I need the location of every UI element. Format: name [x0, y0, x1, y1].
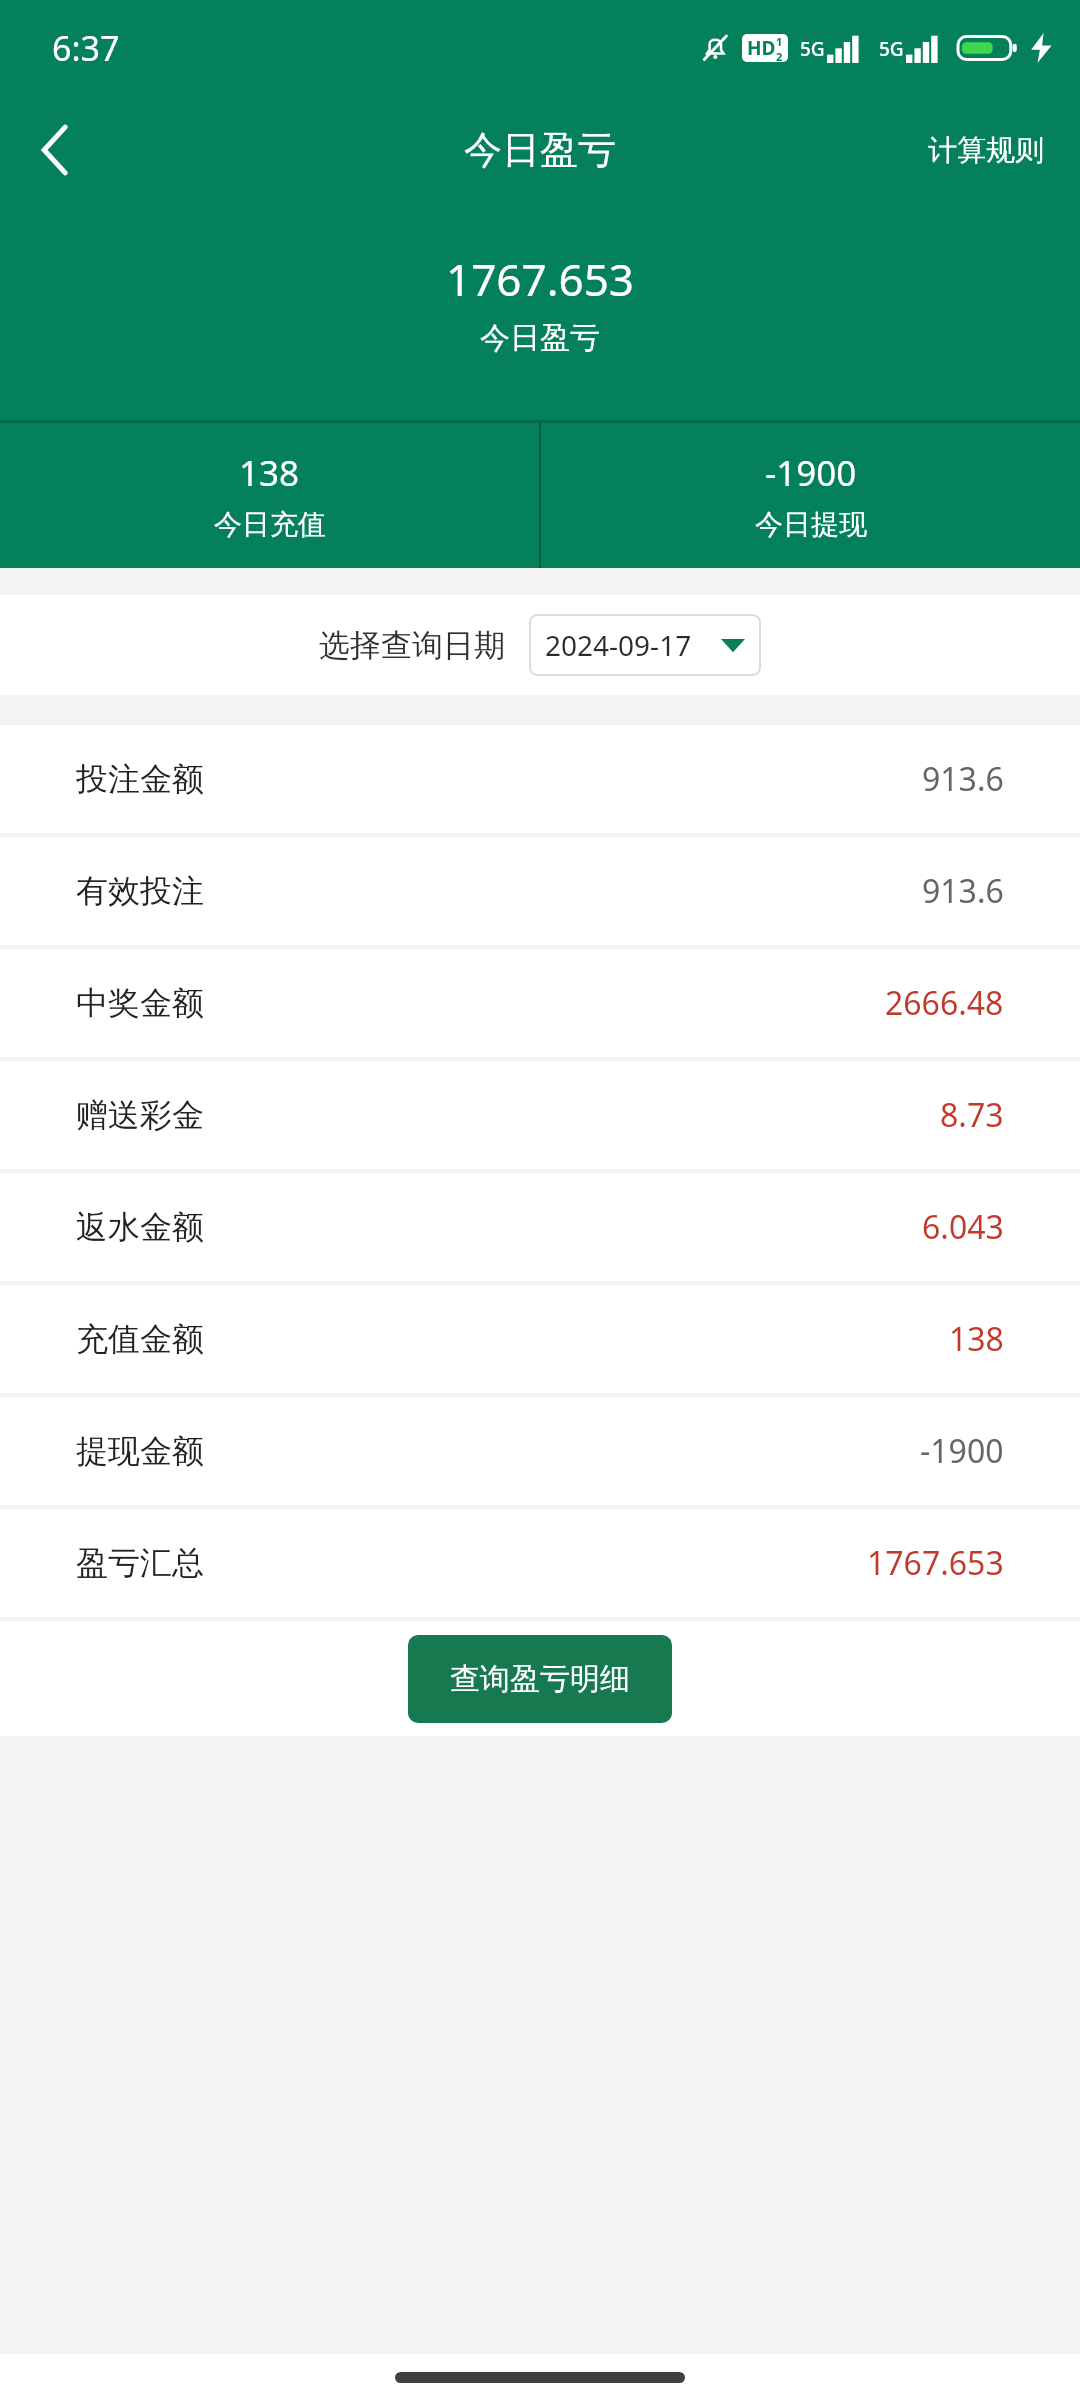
staticText: -1900 [920, 1429, 1004, 1473]
staticText: 充值金额 [76, 1319, 204, 1359]
button[interactable]: 有效投注 [0, 837, 1080, 945]
staticText: 今日提现 [755, 507, 867, 542]
staticText: 今日充值 [214, 507, 326, 542]
staticText: 8.73 [940, 1093, 1004, 1137]
button[interactable]: 返水金额 [0, 1173, 1080, 1281]
button[interactable]: 提现金额 [0, 1397, 1080, 1505]
button[interactable]: 投注金额 [0, 725, 1080, 833]
staticText: 选择查询日期 [319, 626, 505, 665]
staticText: 1 [776, 34, 783, 49]
staticText: 返水金额 [76, 1207, 204, 1247]
staticText: 1767.653 [867, 1541, 1004, 1585]
button[interactable]: 赠送彩金 [0, 1061, 1080, 1169]
staticText: 投注金额 [76, 759, 204, 799]
button[interactable]: 返回 [0, 95, 110, 205]
staticText: 6:37 [52, 25, 120, 71]
staticText: 5G [800, 36, 825, 62]
button[interactable]: 中奖金额 [0, 949, 1080, 1057]
staticText: 5G [879, 36, 904, 62]
staticText: 提现金额 [76, 1431, 204, 1471]
button[interactable]: 计算规则 [892, 95, 1080, 205]
staticText: HD [747, 35, 776, 61]
staticText: 有效投注 [76, 871, 204, 911]
staticText: 赠送彩金 [76, 1095, 204, 1135]
button[interactable]: -1900 [541, 423, 1080, 568]
staticText: 6.043 [922, 1205, 1004, 1249]
button[interactable]: 2024-09-17 [529, 614, 761, 676]
staticText: 今日盈亏 [480, 319, 600, 357]
staticText: 今日盈亏 [464, 126, 616, 174]
staticText: 中奖金额 [76, 983, 204, 1023]
staticText: 138 [949, 1317, 1004, 1361]
staticText: 138 [239, 449, 300, 497]
staticText: 2024-09-17 [545, 626, 692, 664]
staticText: 2 [776, 49, 783, 62]
button[interactable]: 138 [0, 423, 539, 568]
staticText: 1767.653 [446, 249, 634, 309]
staticText: -1900 [765, 449, 857, 497]
staticText: 查询盈亏明细 [450, 1660, 630, 1698]
staticText: 计算规则 [928, 132, 1044, 169]
button[interactable]: 充值金额 [0, 1285, 1080, 1393]
button[interactable]: 查询盈亏明细 [408, 1635, 672, 1723]
staticText: 913.6 [922, 757, 1004, 801]
button[interactable]: 盈亏汇总 [0, 1509, 1080, 1617]
staticText: 盈亏汇总 [76, 1543, 204, 1583]
staticText: 913.6 [922, 869, 1004, 913]
staticText: 2666.48 [885, 981, 1004, 1025]
